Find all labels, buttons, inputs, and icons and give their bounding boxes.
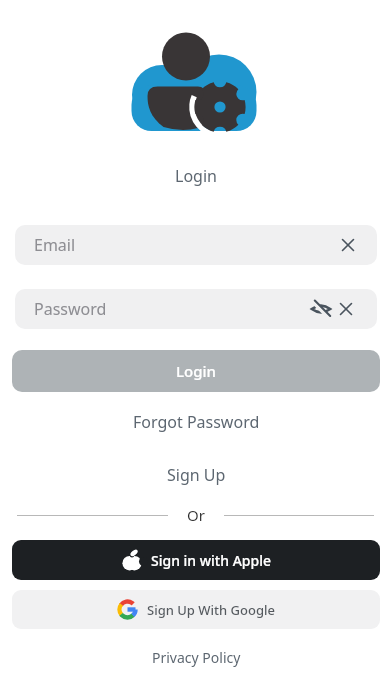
staticText: Login bbox=[175, 165, 217, 187]
button[interactable]: Email bbox=[15, 225, 377, 265]
button[interactable]: Forgot Password bbox=[133, 411, 260, 433]
button[interactable]: Sign in with Apple bbox=[12, 540, 380, 580]
staticText: Or bbox=[187, 505, 205, 525]
button[interactable]: Password bbox=[15, 289, 377, 329]
button[interactable]: Sign Up bbox=[167, 464, 226, 486]
staticText: Email bbox=[34, 234, 76, 256]
staticText: Login bbox=[176, 361, 216, 381]
button[interactable]: Privacy Policy bbox=[152, 648, 241, 667]
staticText: Password bbox=[34, 298, 107, 320]
button[interactable]: Login bbox=[12, 350, 380, 392]
staticText: Sign in with Apple bbox=[151, 551, 271, 570]
button[interactable]: Sign Up With Google bbox=[12, 590, 380, 629]
staticText: Sign Up With Google bbox=[147, 601, 275, 619]
